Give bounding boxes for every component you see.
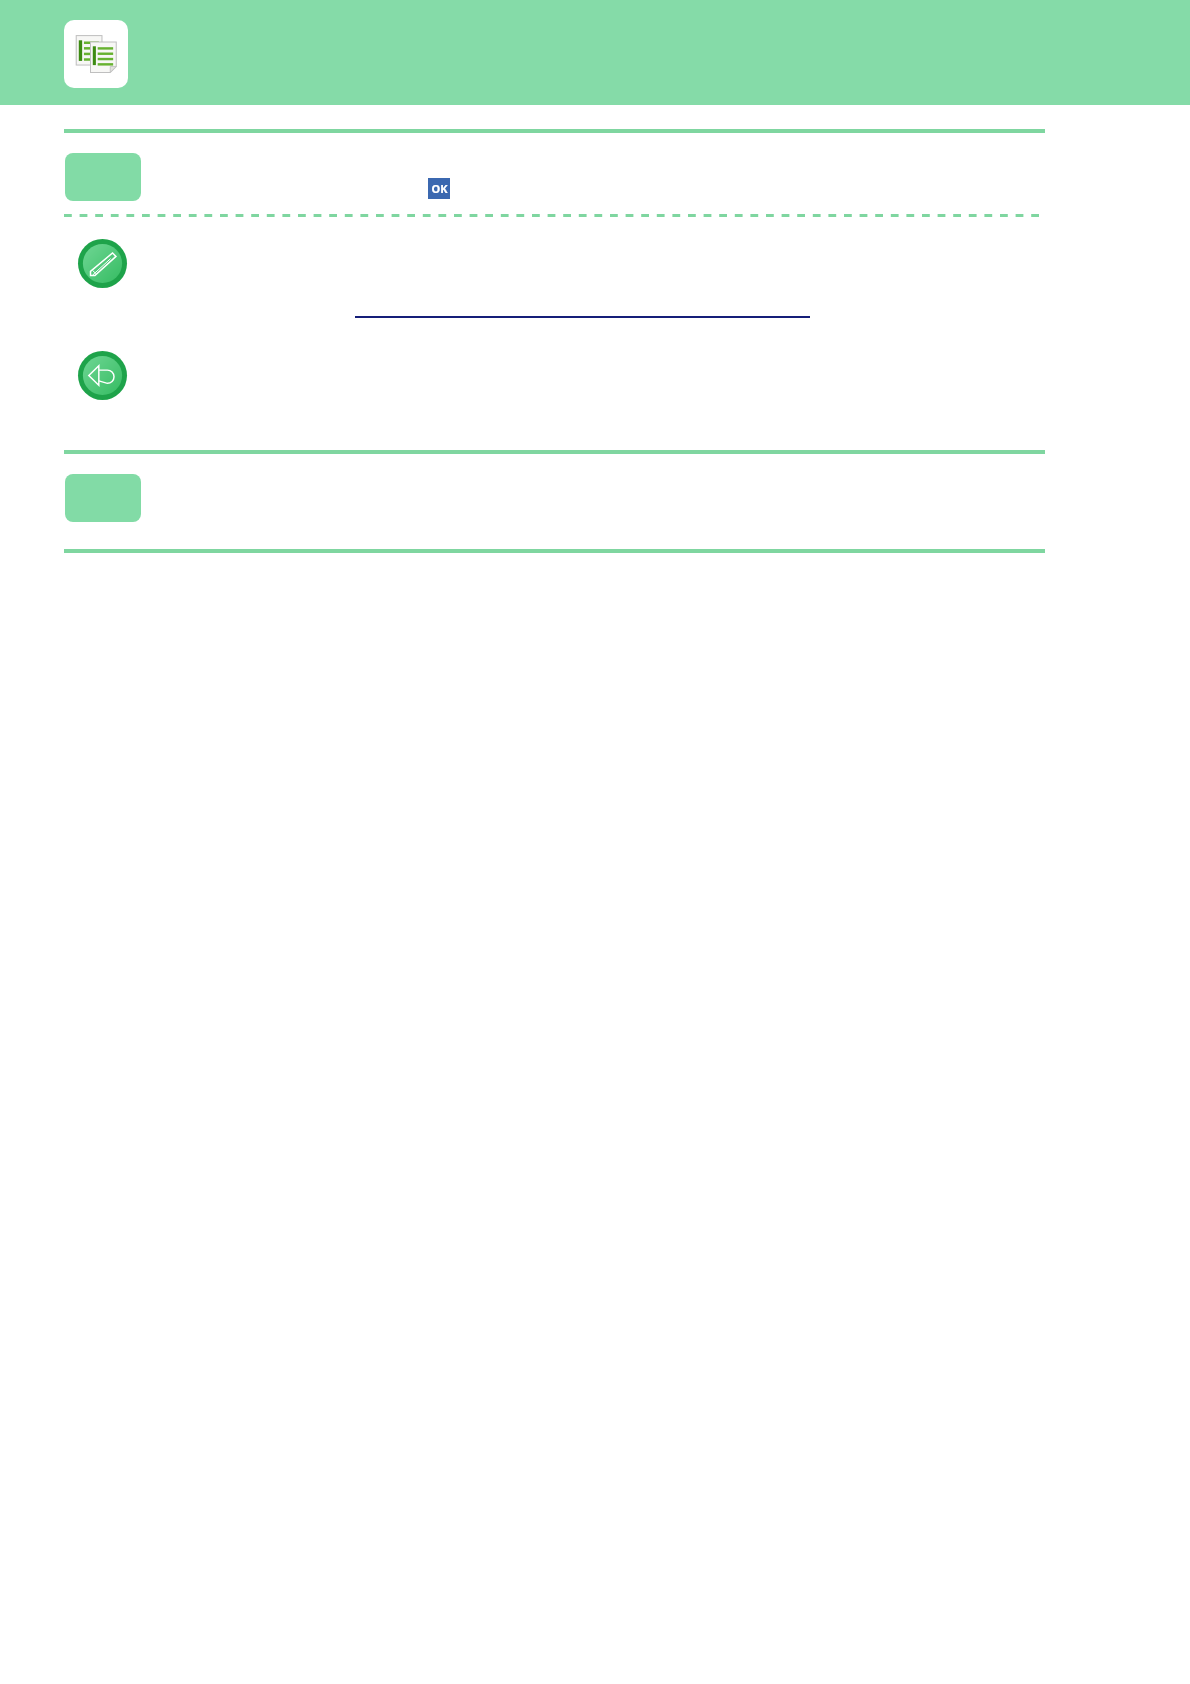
- button[interactable]: Step one: [65, 153, 141, 201]
- button[interactable]: Copy: [64, 20, 128, 88]
- button[interactable]: Step two: [65, 474, 141, 522]
- button[interactable]: Cancel: [78, 351, 127, 400]
- staticText: OK: [431, 181, 448, 196]
- button[interactable]: Note: [78, 239, 127, 288]
- button[interactable]: OK: [428, 178, 450, 199]
